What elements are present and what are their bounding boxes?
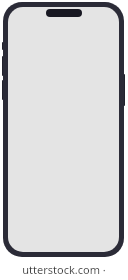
other: Volume down	[2, 80, 5, 100]
other: Power button	[122, 74, 125, 106]
button[interactable]	[8, 7, 119, 252]
other: Volume up	[2, 56, 5, 76]
staticText: utterstock.com · 25672813	[0, 262, 128, 276]
other: Action button	[2, 42, 5, 50]
other: Dynamic Island	[46, 9, 82, 17]
